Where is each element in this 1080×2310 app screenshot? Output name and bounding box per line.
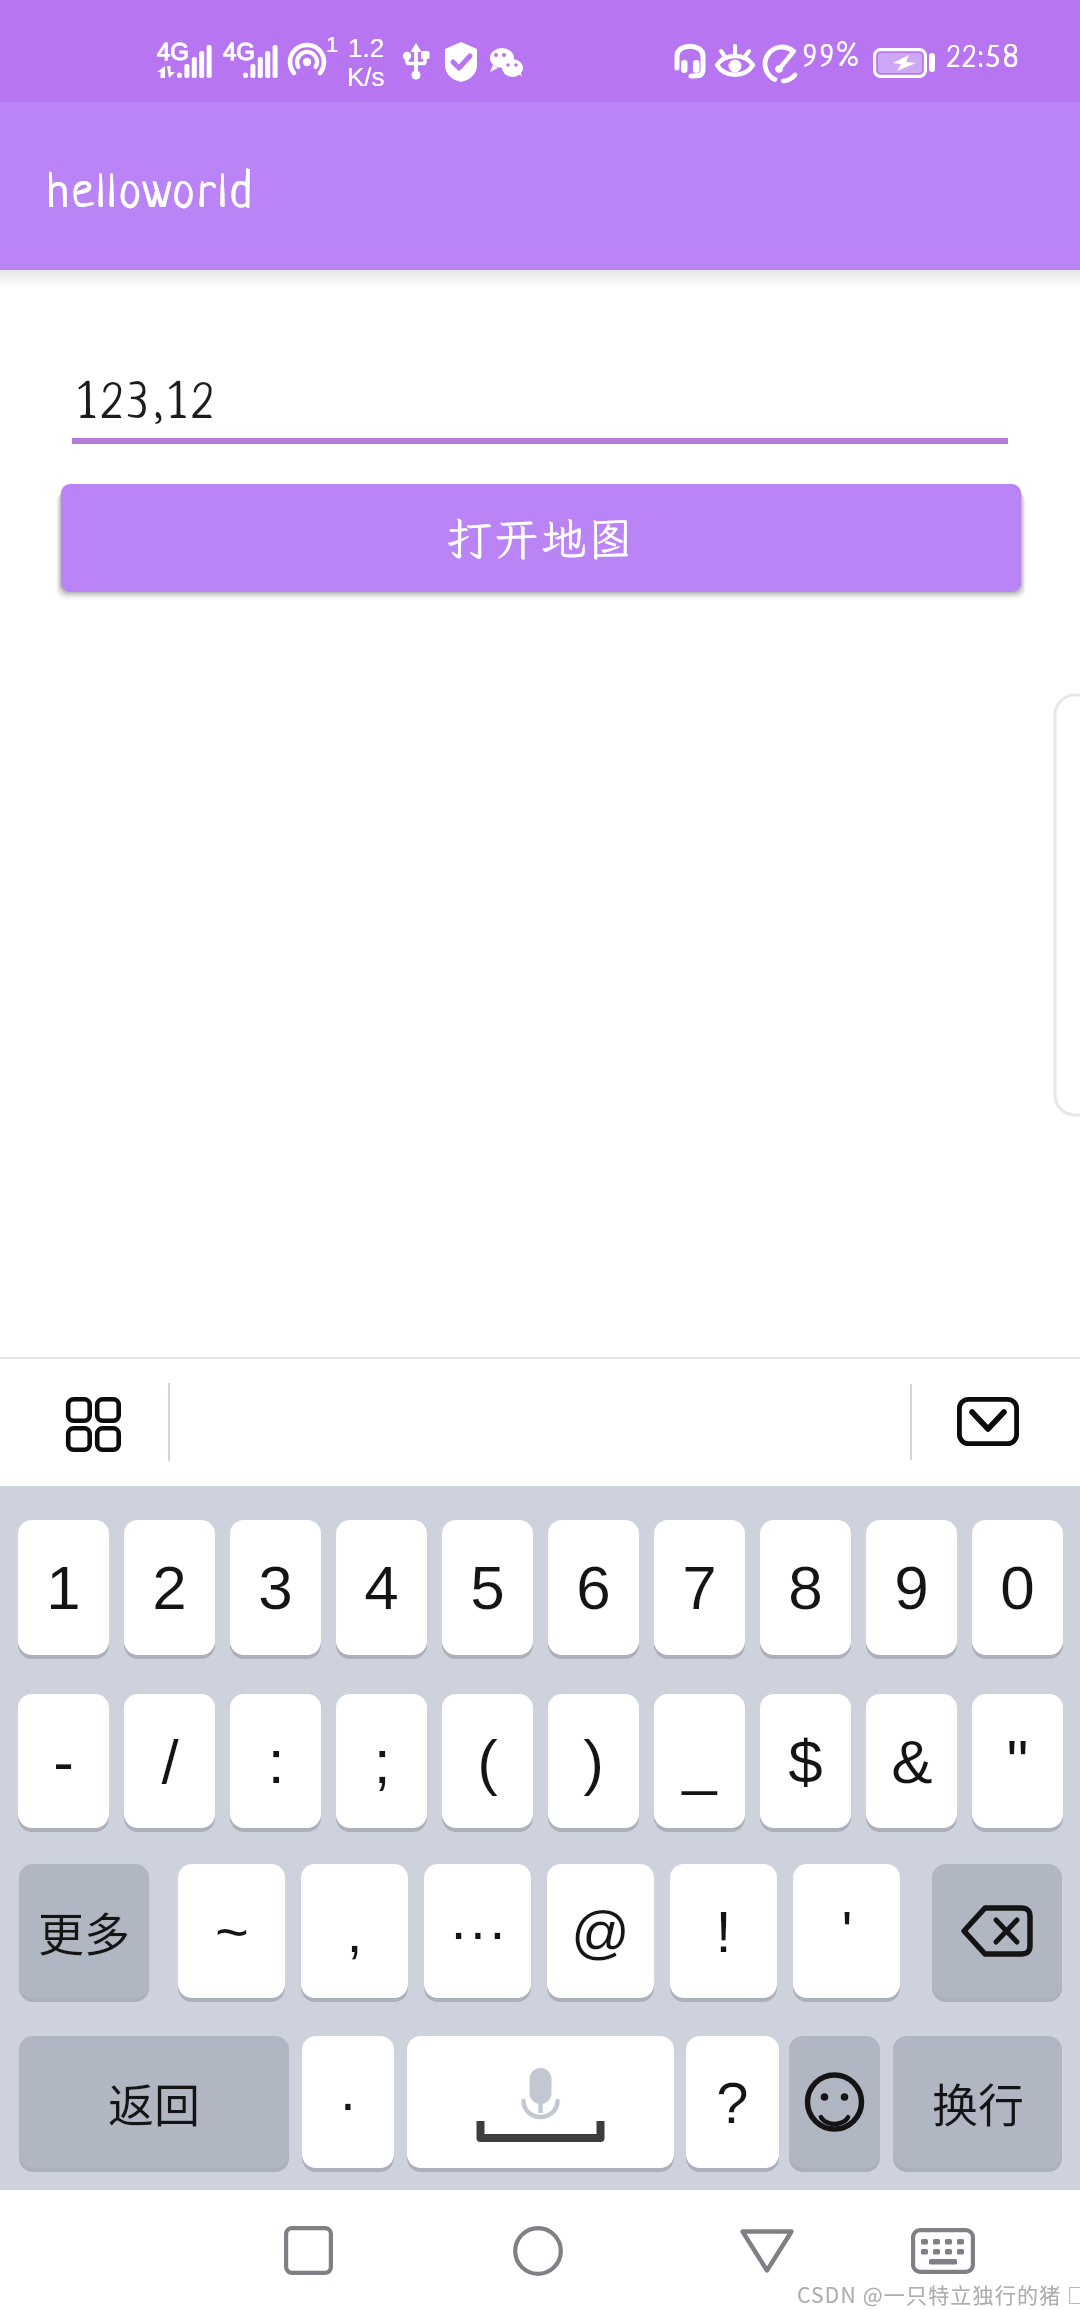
staticText: CSDN @一只特立独行的猪 □ □ — [797, 2279, 1080, 2309]
button[interactable]: / — [124, 1694, 215, 1828]
button[interactable]: ··· — [424, 1864, 531, 1998]
button[interactable]: Space — [407, 2036, 674, 2168]
button[interactable]: 4 — [336, 1520, 427, 1655]
staticText: 7 — [682, 1553, 717, 1622]
button[interactable]: ) — [548, 1694, 639, 1828]
button[interactable]: " — [972, 1694, 1063, 1828]
button[interactable]: 0 — [972, 1520, 1063, 1655]
staticText: _ — [682, 1727, 717, 1796]
button[interactable]: Backspace — [932, 1864, 1062, 1998]
staticText: ' — [841, 1899, 853, 1964]
button[interactable]: Back — [740, 2229, 794, 2273]
staticText: 9 — [894, 1553, 929, 1622]
staticText: 更多 — [38, 1898, 130, 1965]
staticText: ; — [373, 1727, 391, 1796]
button[interactable]: 更多 — [19, 1864, 149, 1998]
button[interactable]: 3 — [230, 1520, 321, 1655]
staticText: - — [53, 1727, 74, 1796]
staticText: 6 — [576, 1553, 611, 1622]
button[interactable]: 打开地图 — [61, 484, 1021, 592]
button[interactable]: ? — [686, 2036, 779, 2168]
button[interactable]: 5 — [442, 1520, 533, 1655]
button[interactable]: Emoji — [789, 2036, 880, 2168]
staticText: 4G — [223, 38, 256, 65]
button[interactable]: ; — [336, 1694, 427, 1828]
staticText: ) — [583, 1727, 604, 1796]
staticText: 5 — [470, 1553, 505, 1622]
button[interactable]: Recents — [284, 2226, 333, 2275]
staticText: 1.2 — [348, 33, 385, 62]
staticText: @ — [571, 1899, 630, 1964]
staticText: " — [1006, 1727, 1029, 1796]
staticText: 打开地图 — [447, 509, 636, 568]
staticText: ? — [716, 2070, 749, 2135]
staticText: K/s — [347, 62, 385, 91]
button[interactable]: Keyboard layouts — [66, 1397, 117, 1448]
staticText: : — [267, 1727, 285, 1796]
button[interactable]: ! — [670, 1864, 777, 1998]
button[interactable]: & — [866, 1694, 957, 1828]
staticText: ! — [715, 1899, 732, 1964]
button[interactable]: 换行 — [893, 2036, 1062, 2168]
staticText: & — [891, 1727, 933, 1796]
button[interactable]: Switch keyboard — [911, 2228, 975, 2274]
button[interactable]: 6 — [548, 1520, 639, 1655]
button[interactable]: $ — [760, 1694, 851, 1828]
staticText: 99% — [803, 42, 862, 75]
button[interactable]: @ — [547, 1864, 654, 1998]
button[interactable]: : — [230, 1694, 321, 1828]
staticText: 22:58 — [947, 43, 1022, 76]
staticText: · — [338, 2070, 358, 2135]
button[interactable]: 9 — [866, 1520, 957, 1655]
button[interactable]: 1 — [18, 1520, 109, 1655]
button[interactable]: 2 — [124, 1520, 215, 1655]
staticText: 4 — [364, 1553, 399, 1622]
button[interactable]: ~ — [178, 1864, 285, 1998]
button[interactable]: · — [302, 2036, 394, 2168]
staticText: 0 — [1000, 1553, 1035, 1622]
button[interactable]: ' — [793, 1864, 900, 1998]
button[interactable]: - — [18, 1694, 109, 1828]
button[interactable]: Hide keyboard — [957, 1397, 1019, 1446]
button[interactable]: _ — [654, 1694, 745, 1828]
staticText: 返回 — [108, 2069, 200, 2136]
staticText: 8 — [788, 1553, 823, 1622]
staticText: / — [161, 1727, 179, 1796]
staticText: 4G — [157, 38, 190, 65]
button[interactable]: ( — [442, 1694, 533, 1828]
staticText: ( — [477, 1727, 498, 1796]
staticText: 3 — [258, 1553, 293, 1622]
button[interactable]: , — [301, 1864, 408, 1998]
staticText: 换行 — [932, 2069, 1024, 2136]
staticText: 1 — [46, 1553, 81, 1622]
staticText: 123,12 — [78, 380, 219, 433]
button[interactable]: 7 — [654, 1520, 745, 1655]
staticText: helloworld — [47, 169, 255, 222]
staticText: 1 — [326, 32, 339, 57]
staticText: ··· — [449, 1899, 507, 1964]
staticText: ~ — [215, 1899, 249, 1964]
staticText: $ — [788, 1727, 823, 1796]
staticText: , — [346, 1899, 363, 1964]
button[interactable]: 返回 — [19, 2036, 289, 2168]
staticText: 2 — [152, 1553, 187, 1622]
button[interactable]: Home — [513, 2226, 563, 2276]
button[interactable]: 8 — [760, 1520, 851, 1655]
